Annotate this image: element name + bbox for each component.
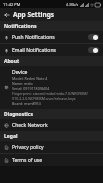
button[interactable]: Device: [0, 66, 103, 109]
staticText: Terms of use: [12, 157, 43, 164]
button[interactable]: Terms of use: [0, 154, 103, 166]
staticText: 11:42 PM: [3, 2, 21, 7]
button[interactable]: Back: [0, 8, 13, 21]
staticText: Notifications: [4, 23, 37, 30]
staticText: About: [4, 58, 20, 65]
staticText: Check Network: [12, 122, 48, 129]
button[interactable]: Check Network: [0, 119, 103, 131]
staticText: Diagnostics: [4, 111, 33, 118]
staticText: App Settings: [13, 10, 55, 19]
staticText: V10.2.2.0.NCFMIXM:user/release-keys: [12, 96, 76, 101]
button[interactable]: Email Notifications: [0, 44, 103, 56]
staticText: Fingerprint: xiaomi/mido/mido:7.0/NRD90M…: [12, 91, 88, 96]
staticText: Board: msm8953: [12, 101, 41, 106]
staticText: Device: [12, 69, 28, 76]
staticText: 4.3Kb/s: [66, 2, 79, 7]
staticText: Name: mido: [12, 81, 33, 86]
staticText: Email Notifications: [12, 47, 88, 54]
staticText: Push Notifications: [12, 34, 88, 41]
staticText: Model: Redmi Note 4: [12, 76, 48, 81]
button[interactable]: Privacy policy: [0, 141, 103, 153]
button[interactable]: Push Notifications: [0, 31, 103, 43]
staticText: Privacy policy: [12, 144, 44, 151]
staticText: Legal: [4, 133, 18, 140]
staticText: Serial: 09191180/8404: [12, 86, 50, 91]
